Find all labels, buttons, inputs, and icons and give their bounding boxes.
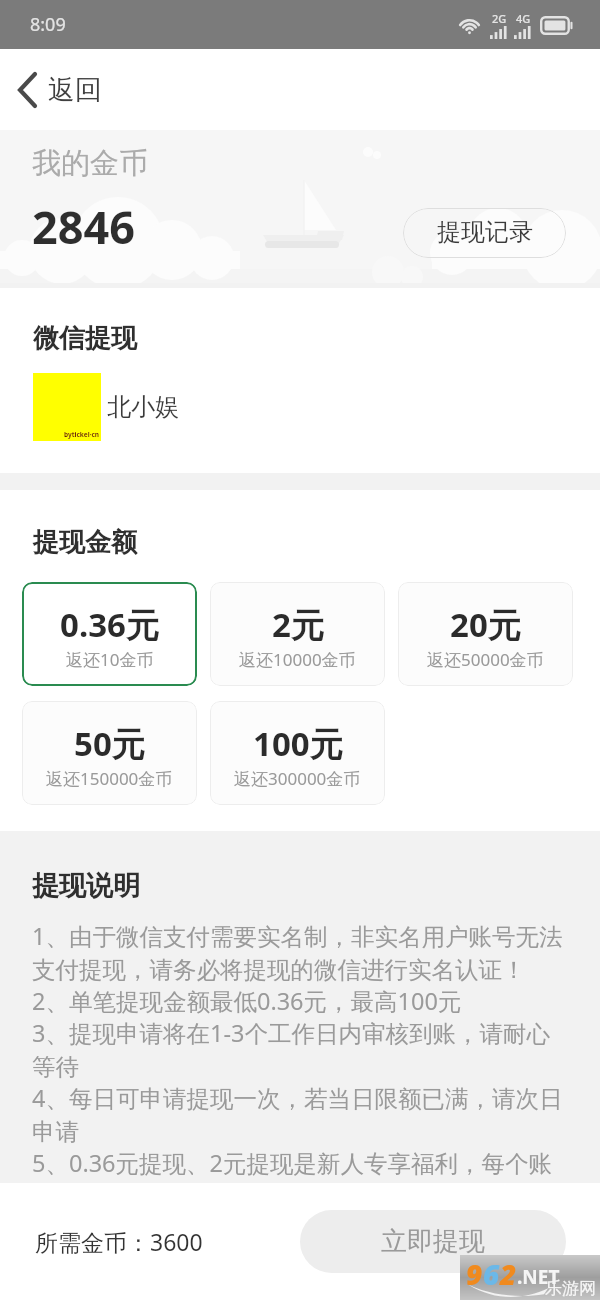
staticText: .NET [517, 1264, 560, 1290]
staticText: 返还10000金币 [239, 648, 356, 671]
staticText: 返还50000金币 [427, 648, 544, 671]
staticText: 返还10金币 [66, 648, 154, 671]
staticText: 2 [500, 1255, 517, 1293]
staticText: 返回 [48, 73, 102, 107]
staticText: 提现金额 [33, 526, 137, 559]
staticText: 立即提现 [381, 1225, 485, 1258]
staticText: 4、每日可申请提现一次，若当日限额已满，请次日申请 [32, 1082, 570, 1147]
staticText: bytickel·cn [64, 430, 100, 439]
staticText: 9 [466, 1255, 483, 1293]
staticText: 3、提现申请将在1-3个工作日内审核到账，请耐心等待 [32, 1017, 570, 1082]
staticText: 返还300000金币 [234, 767, 361, 790]
staticText: 微信提现 [33, 322, 137, 355]
staticText: 2846 [32, 196, 135, 257]
staticText: 我的金币 [32, 145, 148, 182]
staticText: 5、0.36元提现、2元提现是新人专享福利，每个账 [32, 1147, 553, 1179]
button[interactable]: 20元 [398, 582, 573, 686]
staticText: 6 [483, 1255, 500, 1293]
button[interactable]: 2元 [210, 582, 385, 686]
button[interactable]: 0.36元 [22, 582, 197, 686]
button[interactable]: 50元 [22, 701, 197, 805]
button[interactable]: 立即提现 [300, 1210, 566, 1273]
other: Back [18, 72, 37, 108]
staticText: 100元 [253, 721, 343, 766]
staticText: 所需金币：3600 [35, 1226, 203, 1257]
staticText: 4G [516, 11, 531, 26]
staticText: 乐游网 [545, 1278, 596, 1299]
staticText: 2元 [272, 602, 324, 647]
button[interactable]: Back [10, 66, 110, 114]
button[interactable]: 提现记录 [403, 208, 566, 258]
staticText: 1、由于微信支付需要实名制，非实名用户账号无法支付提现，请务必将提现的微信进行实… [32, 920, 570, 985]
staticText: 提现记录 [437, 217, 533, 247]
button[interactable]: 100元 [210, 701, 385, 805]
staticText: 返还150000金币 [46, 767, 173, 790]
staticText: 0.36元 [60, 602, 159, 647]
staticText: 8:09 [30, 12, 66, 37]
staticText: 50元 [74, 721, 145, 766]
staticText: 2G [492, 11, 507, 26]
staticText: 提现说明 [32, 869, 140, 903]
staticText: 2、单笔提现金额最低0.36元，最高100元 [32, 985, 462, 1017]
staticText: 北小娱 [107, 392, 179, 422]
staticText: 20元 [450, 602, 521, 647]
